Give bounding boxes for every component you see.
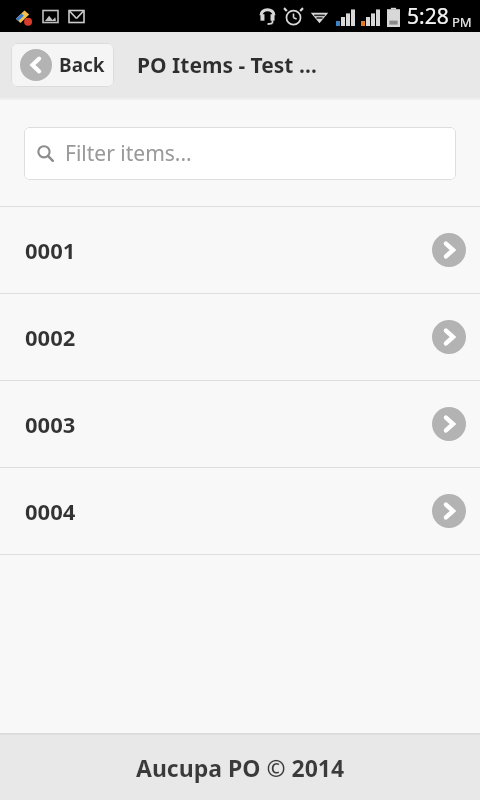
staticText: Back <box>59 52 105 78</box>
staticText: PO Items - Test … <box>137 51 317 80</box>
button[interactable]: 0003 <box>0 381 480 467</box>
staticText: 0002 <box>25 322 76 352</box>
button[interactable]: 0004 <box>0 468 480 554</box>
staticText: 5:28 <box>407 2 449 31</box>
staticText: 0004 <box>25 496 76 526</box>
button[interactable]: Back <box>11 43 114 87</box>
other: Open 0002 <box>432 320 466 354</box>
staticText: Filter items... <box>65 139 192 168</box>
other: Open 0001 <box>432 233 466 267</box>
button[interactable]: Filter items... <box>24 127 456 180</box>
staticText: PM <box>452 13 472 31</box>
button[interactable]: 0002 <box>0 294 480 380</box>
button[interactable]: 0001 <box>0 207 480 293</box>
staticText: Aucupa PO © 2014 <box>136 752 345 783</box>
other: Open 0003 <box>432 407 466 441</box>
staticText: 0001 <box>25 235 76 265</box>
other: Open 0004 <box>432 494 466 528</box>
staticText: 0003 <box>25 409 76 439</box>
